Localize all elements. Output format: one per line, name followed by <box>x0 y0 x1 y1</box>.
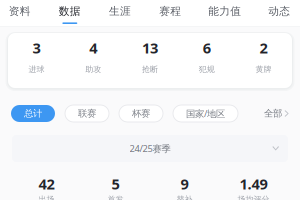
button[interactable]: 能力值 <box>208 0 241 27</box>
staticText: 替补 <box>176 194 192 200</box>
staticText: 全部 <box>264 108 282 119</box>
button[interactable]: 24/25赛季 <box>12 135 288 162</box>
staticText: 助攻 <box>85 64 101 74</box>
button[interactable]: 动态 <box>267 0 291 27</box>
staticText: 抢断 <box>142 64 158 74</box>
staticText: 总计 <box>24 108 42 119</box>
staticText: 6 <box>203 38 211 57</box>
staticText: 犯规 <box>199 64 215 74</box>
button[interactable]: 国家/地区 <box>173 105 238 122</box>
staticText: 黄牌 <box>256 64 272 74</box>
button[interactable]: 资料 <box>8 0 32 27</box>
staticText: 42 <box>38 174 54 193</box>
staticText: 资料 <box>9 5 31 18</box>
staticText: 进球 <box>28 64 44 74</box>
staticText: 24/25赛季 <box>129 142 170 155</box>
staticText: 场均评分 <box>237 194 269 200</box>
staticText: 3 <box>32 38 40 57</box>
staticText: 4 <box>89 38 97 57</box>
button[interactable]: 数据 <box>58 0 82 27</box>
staticText: 数据 <box>59 5 81 18</box>
staticText: 动态 <box>268 5 290 18</box>
button[interactable]: 联赛 <box>65 105 109 122</box>
staticText: 首发 <box>107 194 123 200</box>
staticText: 1.49 <box>239 174 267 193</box>
staticText: 出场 <box>38 194 54 200</box>
button[interactable]: 总计 <box>11 105 55 122</box>
button[interactable]: 全部 <box>264 105 289 122</box>
staticText: 生涯 <box>109 5 131 18</box>
staticText: 国家/地区 <box>186 107 225 120</box>
button[interactable]: 赛程 <box>158 0 182 27</box>
staticText: 杯赛 <box>132 108 150 119</box>
staticText: 联赛 <box>78 108 96 119</box>
staticText: 13 <box>142 38 158 57</box>
staticText: 2 <box>260 38 268 57</box>
staticText: 能力值 <box>208 5 241 18</box>
button[interactable]: 生涯 <box>108 0 132 27</box>
button[interactable]: 杯赛 <box>119 105 163 122</box>
staticText: 5 <box>111 174 119 193</box>
staticText: 9 <box>180 174 188 193</box>
staticText: 赛程 <box>159 5 181 18</box>
